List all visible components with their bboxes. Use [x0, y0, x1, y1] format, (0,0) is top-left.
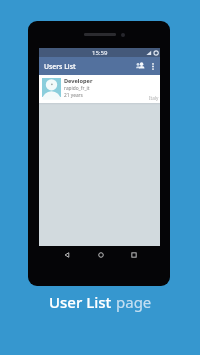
button[interactable]: Back	[50, 247, 84, 263]
staticText: Italy	[149, 95, 159, 101]
staticText: rapido_fr_it	[64, 85, 90, 92]
staticText: 15:59	[92, 49, 108, 57]
button[interactable]: Developer	[39, 75, 160, 103]
button[interactable]: Group	[128, 57, 146, 75]
staticText: 21 years	[64, 92, 83, 99]
staticText: page	[116, 292, 152, 312]
button[interactable]: Recent apps	[117, 247, 150, 263]
button[interactable]: Home	[84, 247, 117, 263]
staticText: Developer	[64, 77, 93, 85]
staticText: User List	[49, 292, 116, 312]
button[interactable]: More options	[146, 57, 159, 75]
staticText: Users List	[44, 62, 76, 71]
